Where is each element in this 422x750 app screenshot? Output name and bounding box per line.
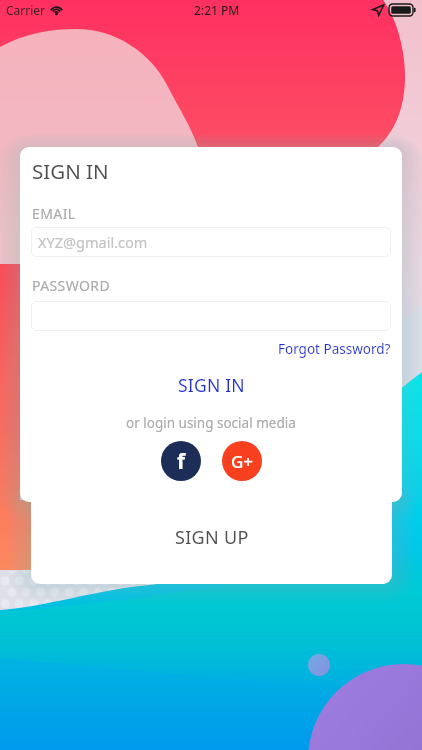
button[interactable]: SIGN IN — [31, 373, 391, 395]
button[interactable]: SIGN UP — [31, 490, 392, 584]
staticText: f — [177, 447, 186, 476]
button[interactable]: Sign in with Google Plus — [222, 441, 262, 481]
button[interactable]: Forgot Password? — [278, 340, 391, 358]
button[interactable] — [31, 301, 391, 331]
staticText: XYZ@gmail.com — [38, 232, 148, 252]
staticText: or login using social media — [126, 414, 296, 432]
staticText: Forgot Password? — [278, 340, 391, 358]
staticText: SIGN UP — [175, 525, 249, 550]
staticText: PASSWORD — [32, 276, 111, 295]
staticText: G+ — [231, 450, 254, 473]
button[interactable]: Sign in with Facebook — [161, 441, 201, 481]
staticText: SIGN IN — [178, 373, 245, 395]
staticText: Carrier — [6, 2, 46, 18]
staticText: EMAIL — [32, 204, 76, 223]
button[interactable]: XYZ@gmail.com — [31, 227, 391, 257]
staticText: SIGN IN — [32, 157, 109, 185]
staticText: 2:21 PM — [194, 2, 240, 18]
